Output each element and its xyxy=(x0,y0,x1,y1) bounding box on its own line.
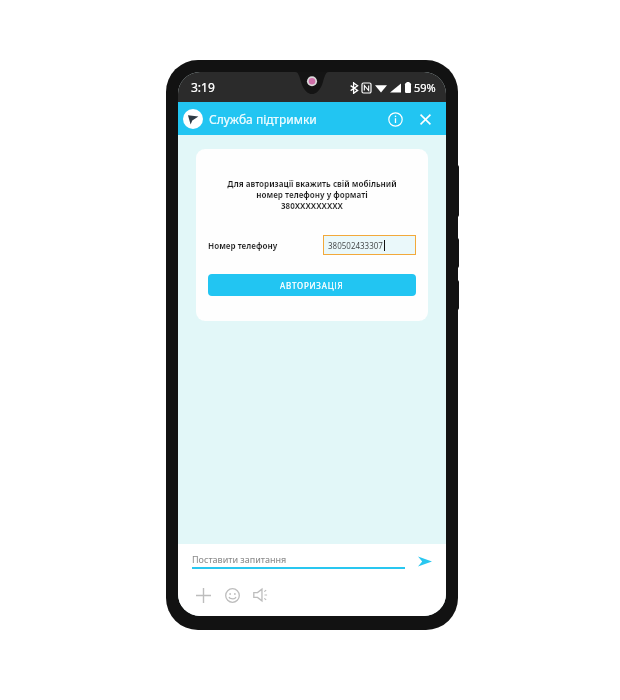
button[interactable]: App logo xyxy=(183,109,203,129)
staticText: Поставити запитання xyxy=(192,553,287,565)
staticText: 3:19 xyxy=(191,79,215,95)
staticText: 380502433307 xyxy=(328,240,383,251)
button[interactable]: Close xyxy=(412,106,438,132)
button[interactable]: Send xyxy=(415,551,435,571)
staticText: Номер телефону xyxy=(208,240,278,251)
button[interactable]: Attach xyxy=(192,584,214,606)
button[interactable]: 380502433307 xyxy=(323,235,416,255)
button[interactable]: Voice message xyxy=(250,584,272,606)
button[interactable]: Information xyxy=(382,106,408,132)
button[interactable]: Поставити запитання xyxy=(192,553,405,569)
staticText: Для авторизації вкажить свій мобільний н… xyxy=(208,178,416,211)
staticText: 59% xyxy=(414,80,436,95)
staticText: Служба підтримки xyxy=(209,111,317,127)
button[interactable]: АВТОРИЗАЦІЯ xyxy=(208,274,416,296)
button[interactable]: Emoji xyxy=(221,584,243,606)
staticText: АВТОРИЗАЦІЯ xyxy=(280,280,344,291)
